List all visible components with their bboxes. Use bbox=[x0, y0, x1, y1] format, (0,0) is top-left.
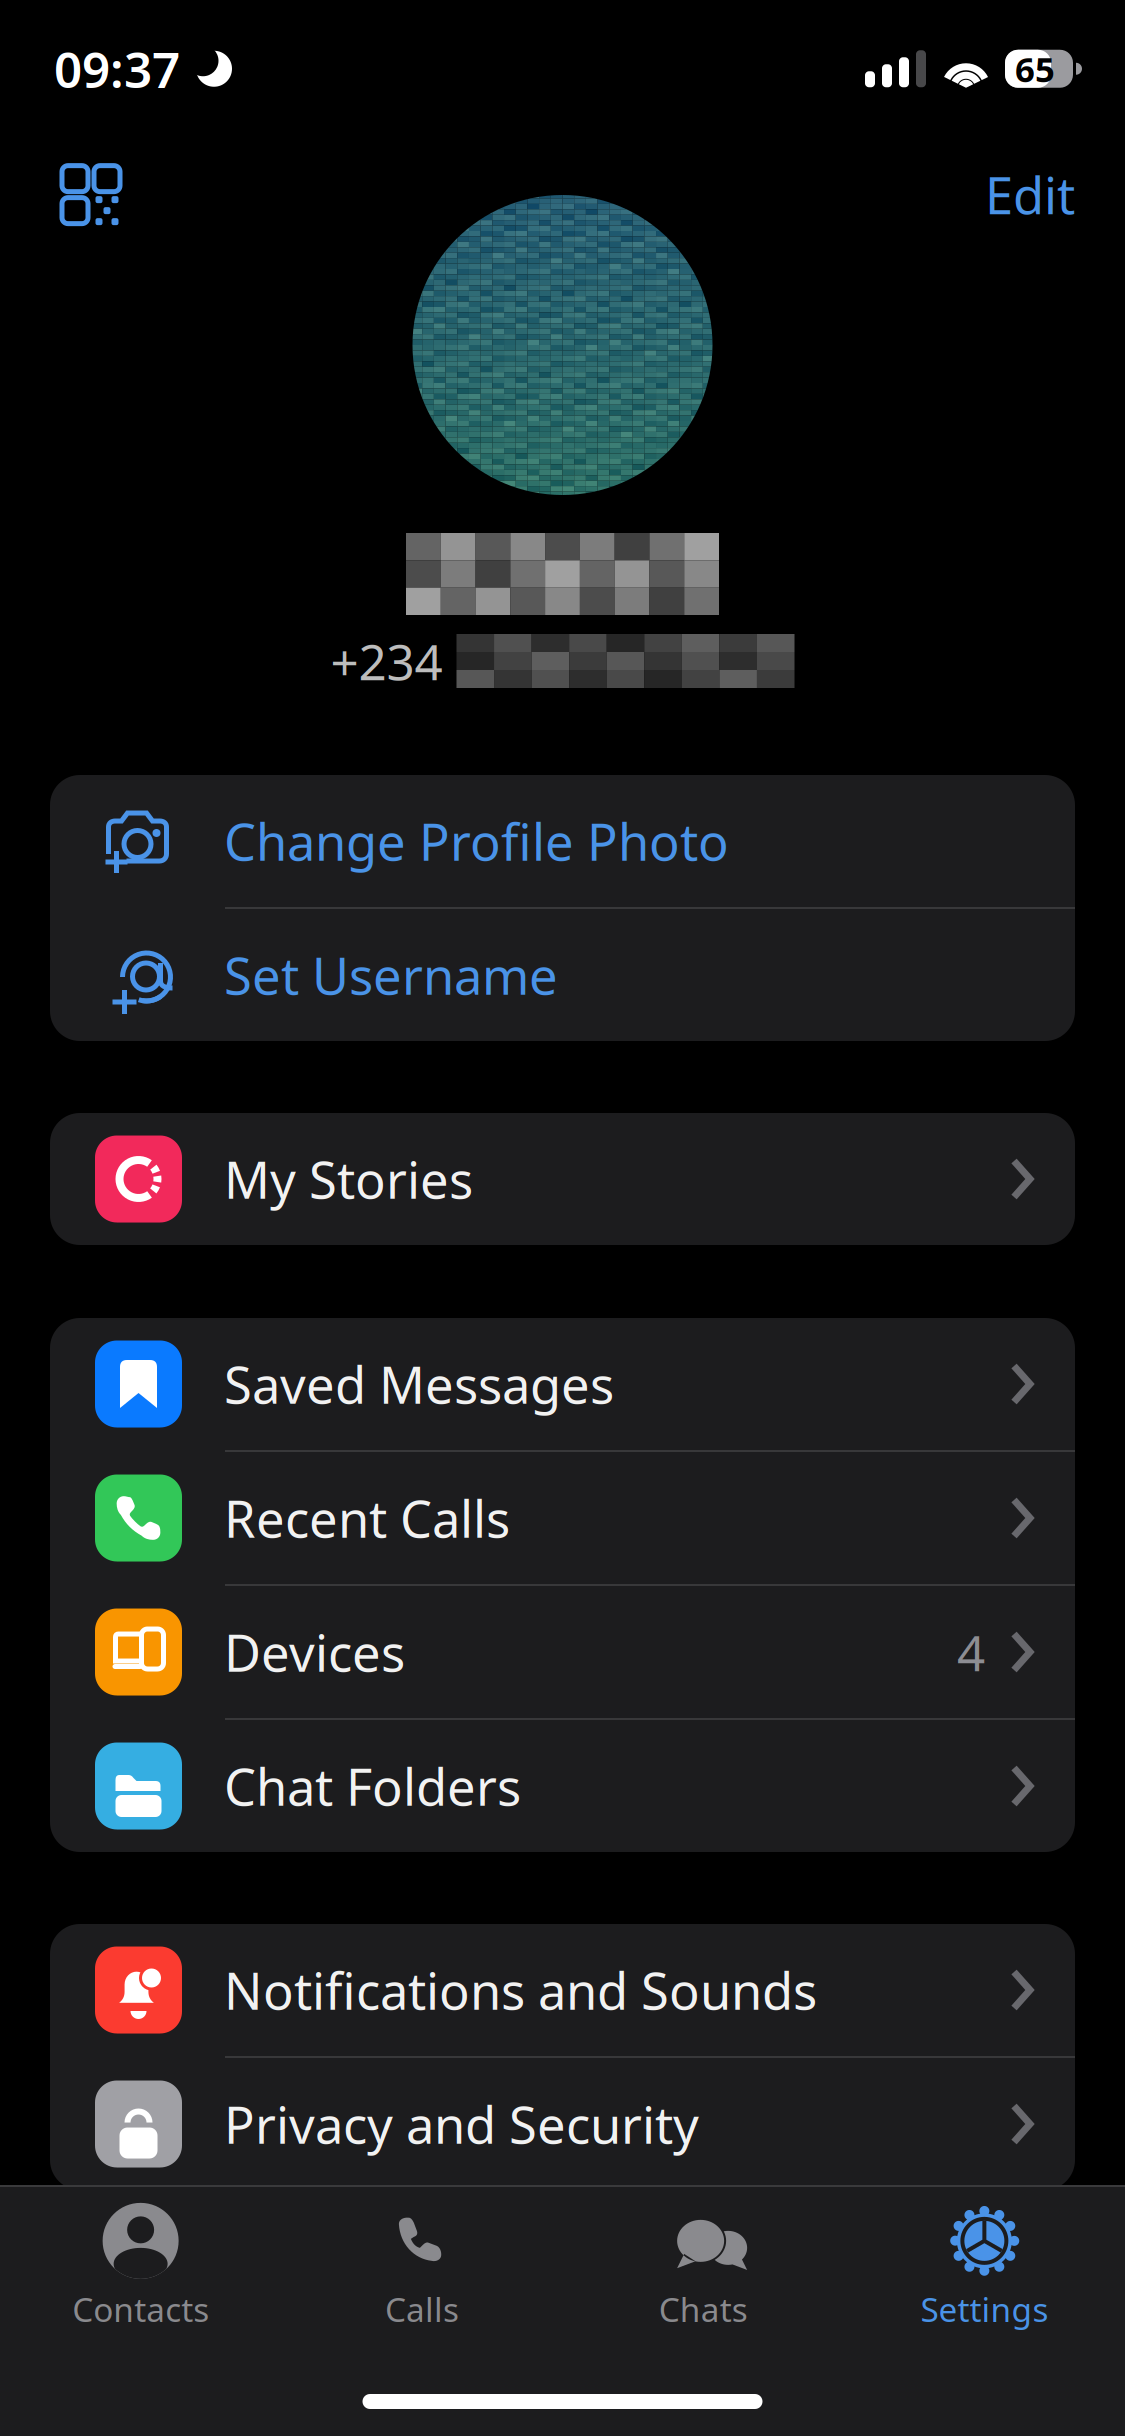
staticText: Privacy and Security bbox=[224, 2090, 699, 2158]
button[interactable]: Settings bbox=[844, 2187, 1125, 2347]
staticText: Recent Calls bbox=[224, 1484, 510, 1552]
staticText: Change Profile Photo bbox=[224, 807, 729, 875]
staticText: Edit bbox=[985, 161, 1075, 228]
button[interactable]: My QR Code bbox=[62, 166, 120, 224]
staticText: 4 bbox=[957, 1619, 985, 1685]
staticText: Notifications and Sounds bbox=[224, 1956, 817, 2024]
button[interactable]: Saved Messages bbox=[50, 1318, 1075, 1450]
staticText: Saved Messages bbox=[224, 1350, 614, 1418]
button[interactable]: Set Username bbox=[50, 909, 1075, 1041]
button[interactable]: Recent Calls bbox=[50, 1452, 1075, 1584]
staticText: 65 bbox=[1015, 46, 1055, 92]
button[interactable]: Contacts bbox=[0, 2187, 281, 2347]
staticText: 09:37 bbox=[54, 36, 180, 101]
button[interactable]: My Stories bbox=[50, 1113, 1075, 1245]
button[interactable]: Chats bbox=[562, 2187, 844, 2347]
staticText: Contacts bbox=[72, 2287, 209, 2331]
staticText: Chat Folders bbox=[224, 1752, 521, 1820]
staticText: Settings bbox=[920, 2287, 1048, 2331]
button[interactable]: Chat Folders bbox=[50, 1720, 1075, 1852]
staticText: Devices bbox=[224, 1618, 405, 1686]
button[interactable]: Change Profile Photo bbox=[50, 775, 1075, 907]
button[interactable]: Edit bbox=[985, 161, 1075, 228]
button[interactable]: Privacy and Security bbox=[50, 2058, 1075, 2190]
staticText: My Stories bbox=[224, 1145, 473, 1213]
staticText: Set Username bbox=[224, 941, 558, 1009]
staticText: Calls bbox=[385, 2287, 459, 2331]
staticText: +234 bbox=[330, 628, 442, 694]
button[interactable]: Calls bbox=[281, 2187, 562, 2347]
button[interactable]: Notifications and Sounds bbox=[50, 1924, 1075, 2056]
staticText: Chats bbox=[659, 2287, 748, 2331]
button[interactable]: Devices bbox=[50, 1586, 1075, 1718]
